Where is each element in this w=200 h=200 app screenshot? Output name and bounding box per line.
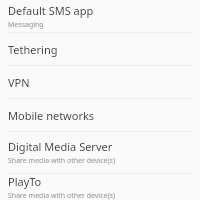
staticText: Mobile networks [8, 108, 95, 123]
staticText: PlayTo [8, 174, 42, 189]
staticText: Default SMS app [8, 3, 94, 18]
button[interactable]: PlayTo [0, 174, 200, 200]
button[interactable]: Digital Media Server [0, 132, 200, 173]
button[interactable]: Tethering [0, 33, 200, 65]
staticText: Messaging [8, 20, 44, 30]
staticText: Tethering [8, 42, 58, 57]
button[interactable]: Default SMS app [0, 0, 200, 32]
staticText: Digital Media Server [8, 139, 113, 154]
button[interactable]: VPN [0, 66, 200, 98]
staticText: Share media with other device(s) [8, 191, 116, 200]
staticText: VPN [8, 75, 30, 90]
button[interactable]: Mobile networks [0, 99, 200, 131]
staticText: Share media with other device(s) [8, 156, 116, 166]
